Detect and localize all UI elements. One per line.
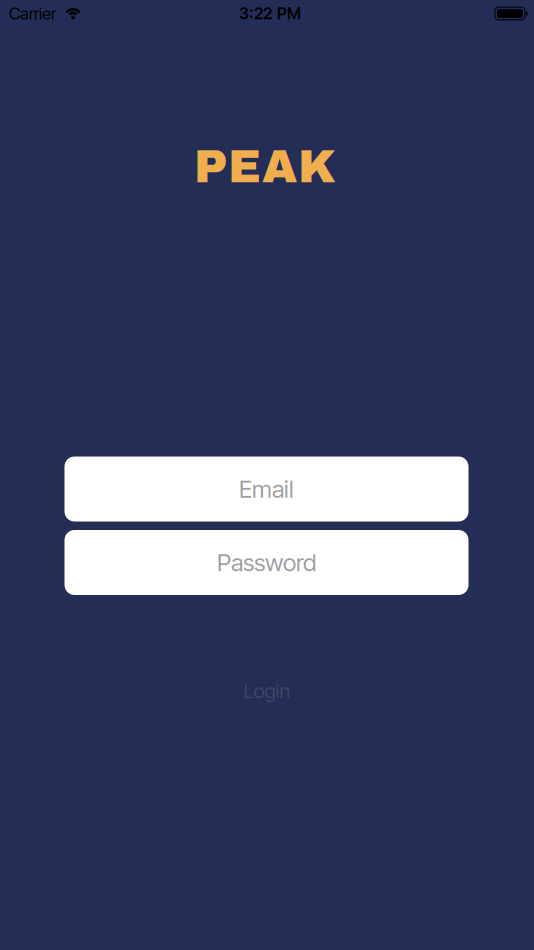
staticText: PEAK <box>194 142 336 192</box>
staticText: PM <box>277 4 301 23</box>
staticText: Email <box>239 474 294 503</box>
staticText: Password <box>217 548 316 577</box>
staticText: Login <box>243 679 290 703</box>
staticText: 3:22 <box>239 4 272 23</box>
staticText: Carrier <box>9 3 56 24</box>
